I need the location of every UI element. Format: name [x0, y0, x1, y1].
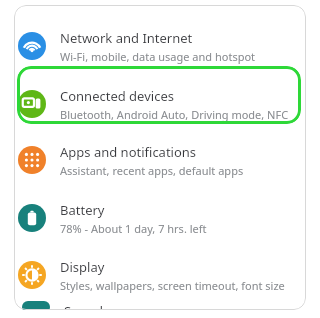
staticText: Display: [60, 258, 105, 276]
staticText: Apps and notifications: [60, 143, 197, 161]
staticText: Styles, wallpapers, screen timeout, font…: [60, 278, 285, 293]
staticText: Connected devices: [60, 87, 174, 105]
button[interactable]: Display: [14, 256, 306, 294]
staticText: Sound: [64, 302, 104, 310]
button[interactable]: Sound: [18, 301, 306, 310]
staticText: Bluetooth, Android Auto, Driving mode, N…: [60, 107, 289, 122]
staticText: Network and Internet: [60, 29, 193, 47]
button[interactable]: Battery: [14, 199, 306, 237]
button[interactable]: Network and Internet: [14, 27, 306, 65]
button[interactable]: Connected devices: [14, 85, 306, 123]
staticText: Battery: [60, 201, 105, 219]
staticText: Assistant, recent apps, default apps: [60, 163, 244, 178]
button[interactable]: Apps and notifications: [14, 141, 306, 179]
staticText: 78% - About 1 day, 7 hrs. left: [60, 221, 207, 236]
staticText: Wi-Fi, mobile, data usage and hotspot: [60, 49, 256, 64]
